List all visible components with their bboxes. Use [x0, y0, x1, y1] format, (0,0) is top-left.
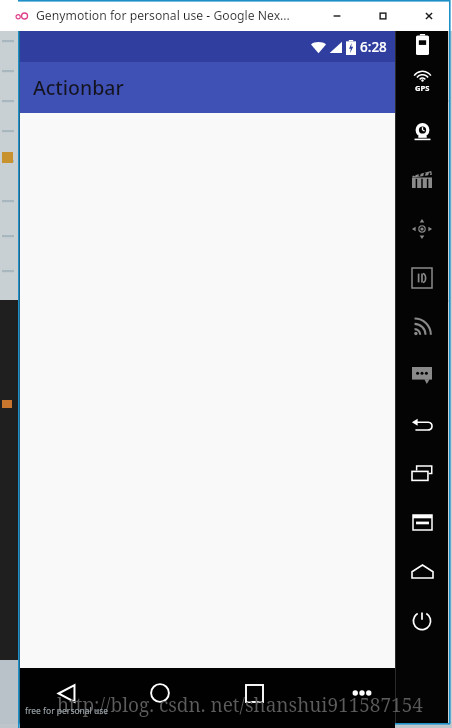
button[interactable]: Screen record: [396, 155, 448, 204]
button[interactable]: Minimize: [314, 0, 360, 31]
button[interactable]: Home: [113, 668, 207, 728]
button[interactable]: More options: [301, 668, 395, 728]
button[interactable]: Back: [396, 400, 448, 449]
button[interactable]: Power: [396, 596, 448, 645]
button[interactable]: GPS: [396, 57, 448, 106]
button[interactable]: Battery: [396, 31, 448, 57]
staticText: GPS: [415, 83, 430, 93]
button[interactable]: Recents: [396, 449, 448, 498]
button[interactable]: Network: [396, 302, 448, 351]
button[interactable]: Recents: [207, 668, 301, 728]
button[interactable]: Home: [396, 547, 448, 596]
staticText: free for personal use: [25, 705, 109, 717]
button[interactable]: Maximize: [360, 0, 406, 31]
staticText: Actionbar: [33, 74, 124, 101]
button[interactable]: Identifiers: [396, 253, 448, 302]
button[interactable]: Camera: [396, 106, 448, 155]
button[interactable]: Rotate: [396, 204, 448, 253]
staticText: 6:28: [360, 38, 387, 56]
staticText: Genymotion for personal use - Google Nex…: [36, 7, 290, 24]
button[interactable]: Close: [406, 0, 452, 31]
button[interactable]: Back: [20, 668, 113, 728]
button[interactable]: SMS: [396, 351, 448, 400]
button[interactable]: Menu: [396, 498, 448, 547]
staticText: http://blog. csdn. net/shanshui911587154: [57, 692, 423, 718]
